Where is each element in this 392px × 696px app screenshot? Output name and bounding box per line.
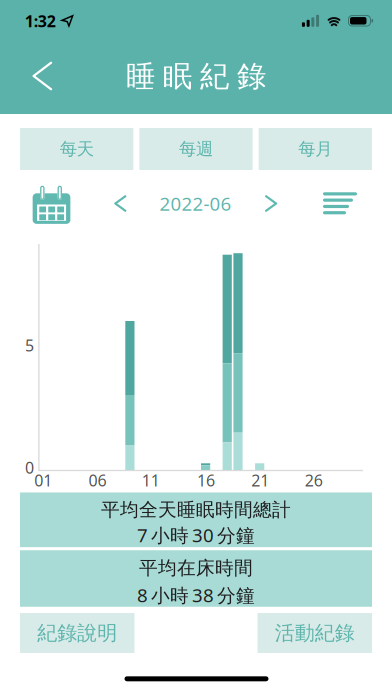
staticText: 5 [25, 335, 34, 356]
button[interactable]: 每週 [139, 128, 253, 170]
button[interactable]: Calendar [29, 178, 74, 224]
staticText: 每天 [60, 138, 94, 160]
staticText: 睡眠紀錄 [126, 58, 266, 94]
staticText: 活動紀錄 [275, 621, 355, 645]
staticText: 06 [89, 470, 107, 491]
staticText: 21 [251, 470, 269, 491]
staticText: 16 [197, 470, 215, 491]
staticText: 2022-06 [159, 191, 231, 216]
staticText: 平均在床時間 [139, 556, 253, 579]
button[interactable]: Previous month [107, 188, 133, 219]
staticText: 平均全天睡眠時間總計 [101, 498, 291, 521]
staticText: 每月 [298, 138, 332, 160]
button[interactable]: 活動紀錄 [258, 613, 372, 653]
staticText: 11 [142, 470, 160, 491]
staticText: 紀錄說明 [37, 621, 117, 645]
staticText: 1:32 [25, 10, 56, 32]
staticText: 26 [305, 470, 323, 491]
button[interactable]: 紀錄說明 [20, 613, 134, 653]
button[interactable]: Next month [258, 188, 284, 219]
staticText: 0 [25, 457, 34, 478]
staticText: 01 [34, 470, 52, 491]
button[interactable]: Back [21, 51, 63, 101]
button[interactable]: 每月 [259, 128, 372, 170]
button[interactable]: Sort records [317, 186, 363, 220]
staticText: 7 小時 30 分鐘 [137, 523, 255, 547]
staticText: 8 小時 38 分鐘 [137, 583, 255, 607]
button[interactable]: 每天 [20, 128, 133, 170]
staticText: 每週 [179, 138, 213, 160]
